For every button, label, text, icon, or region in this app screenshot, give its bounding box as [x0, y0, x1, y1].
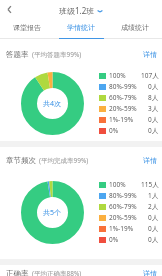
staticText: 详情	[143, 269, 157, 276]
button[interactable]: Back	[0, 0, 18, 18]
staticText: 1%-19%	[109, 115, 134, 124]
staticText: 成绩统计	[121, 23, 149, 32]
staticText: 0人	[148, 213, 159, 222]
button[interactable]: 成绩统计	[108, 22, 162, 39]
staticText: 班级1.2班	[59, 5, 95, 16]
staticText: 0%	[109, 126, 119, 135]
staticText: 共5个	[43, 208, 62, 218]
staticText: 共4次	[43, 99, 62, 109]
staticText: 100%	[109, 71, 126, 80]
staticText: (平均正确率88%)	[32, 269, 82, 276]
staticText: 115人	[141, 180, 159, 189]
staticText: 0人	[148, 115, 159, 124]
button[interactable]: 详情	[143, 50, 157, 59]
staticText: 1%-19%	[109, 224, 134, 233]
button[interactable]: 详情	[143, 269, 157, 276]
staticText: 3人	[148, 104, 159, 113]
staticText: 107人	[141, 71, 159, 80]
staticText: 答题率	[6, 50, 29, 59]
staticText: 学情统计	[67, 23, 95, 32]
staticText: 80%-99%	[109, 191, 137, 200]
staticText: (平均答题率99%)	[32, 50, 82, 59]
staticText: 课堂报告	[13, 23, 41, 32]
staticText: 1人	[148, 191, 159, 200]
button[interactable]: 详情	[143, 156, 157, 165]
staticText: 20%-59%	[109, 213, 137, 222]
staticText: 0人	[148, 126, 159, 135]
staticText: 60%-79%	[109, 93, 137, 102]
staticText: 80%-99%	[109, 82, 137, 91]
staticText: 0人	[148, 82, 159, 91]
staticText: 60%-79%	[109, 202, 137, 211]
staticText: 100%	[109, 180, 126, 189]
button[interactable]: 班级1.2班	[59, 5, 103, 16]
staticText: 2人	[148, 202, 159, 211]
staticText: (平均完成率99%)	[39, 156, 89, 165]
staticText: 0人	[148, 235, 159, 244]
button[interactable]: 学情统计	[54, 22, 108, 39]
staticText: 详情	[143, 156, 157, 165]
button[interactable]: 课堂报告	[0, 22, 54, 39]
staticText: 详情	[143, 50, 157, 59]
staticText: 8人	[148, 93, 159, 102]
staticText: 正确率	[6, 269, 29, 276]
staticText: 章节频次	[6, 156, 36, 165]
staticText: 0人	[148, 224, 159, 233]
staticText: 20%-59%	[109, 104, 137, 113]
staticText: 0%	[109, 235, 119, 244]
